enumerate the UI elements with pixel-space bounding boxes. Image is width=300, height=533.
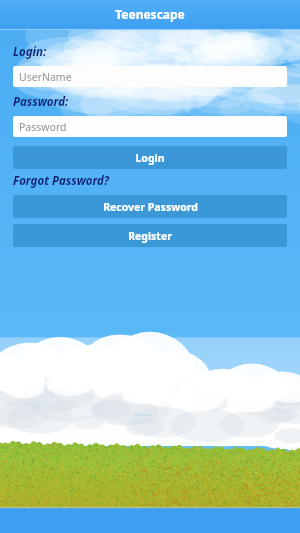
staticText: Login [135, 151, 165, 165]
staticText: Register [128, 229, 172, 243]
button[interactable]: Recover Password [13, 195, 287, 218]
button[interactable]: Register [13, 224, 287, 247]
staticText: Recover Password [103, 200, 198, 214]
staticText: Teenescape [115, 6, 185, 22]
staticText: Password: [13, 94, 69, 110]
button[interactable]: UserName [13, 66, 287, 87]
staticText: UserName [19, 70, 72, 84]
button[interactable]: Login [13, 146, 287, 169]
staticText: Forgot Password? [13, 173, 110, 189]
staticText: Login: [13, 44, 47, 60]
button[interactable]: Password [13, 116, 287, 137]
staticText: Password [19, 120, 67, 134]
